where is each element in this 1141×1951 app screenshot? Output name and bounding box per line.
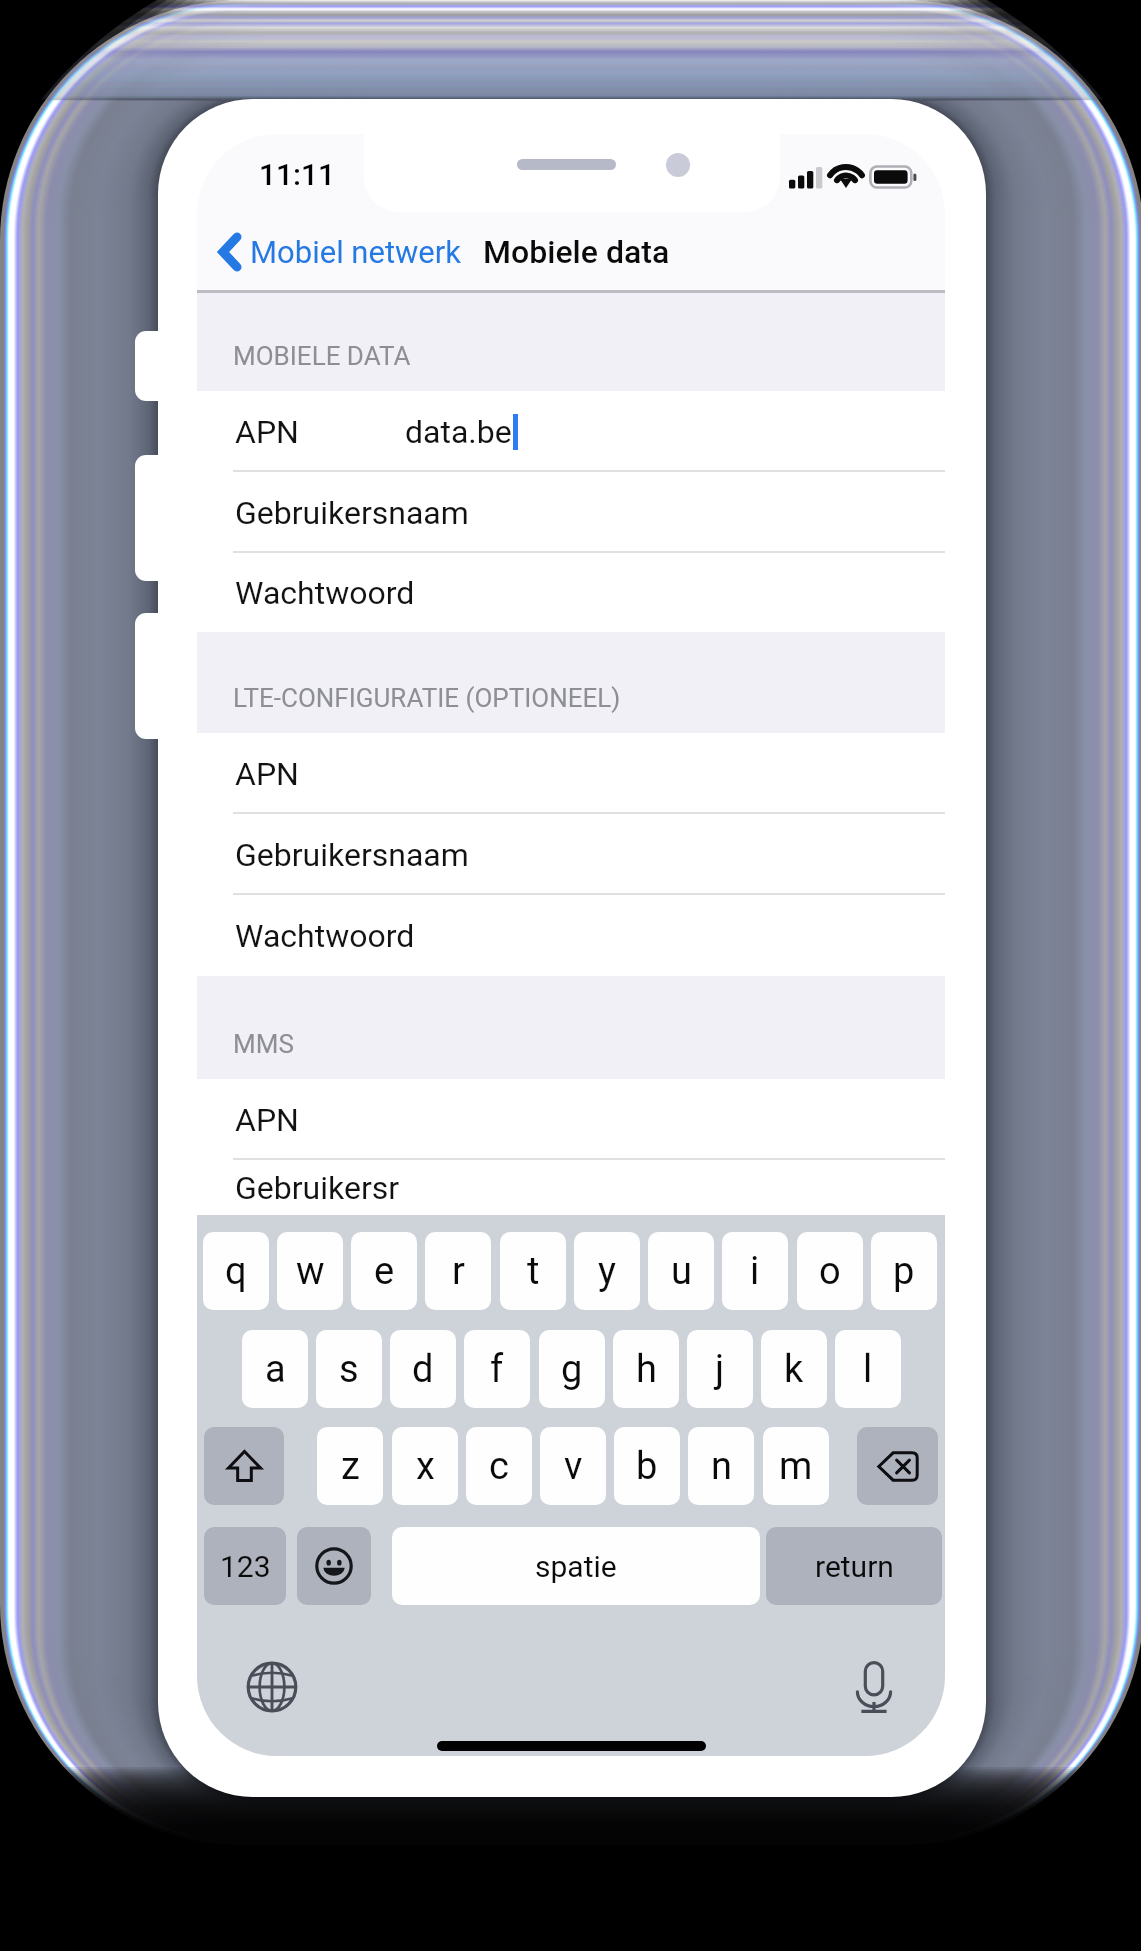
button[interactable]: i [722,1232,788,1310]
button[interactable]: b [614,1427,680,1505]
staticText: f [490,1347,504,1392]
button[interactable]: Wachtwoord [197,553,945,632]
button[interactable]: d [390,1330,456,1408]
button[interactable]: Shift [204,1427,284,1505]
button[interactable]: Wachtwoord [197,895,945,976]
button[interactable]: h [613,1330,679,1408]
staticText: d [412,1347,434,1392]
button[interactable]: j [687,1330,753,1408]
staticText: data.be [405,413,512,451]
staticText: n [711,1444,732,1489]
staticText: x [416,1444,435,1489]
staticText: z [341,1444,360,1489]
button[interactable]: Taal wisselen [243,1658,300,1715]
staticText: c [489,1444,509,1489]
staticText: a [265,1347,286,1392]
button[interactable]: f [464,1330,530,1408]
staticText: h [636,1347,657,1392]
button[interactable]: y [574,1232,640,1310]
button[interactable]: Backspace [857,1427,938,1505]
other: Terug [219,233,240,271]
button[interactable]: u [648,1232,714,1310]
button[interactable]: o [797,1232,863,1310]
staticText: l [863,1347,873,1392]
staticText: MMS [233,1029,294,1059]
staticText: Mobiele data [483,233,670,271]
button[interactable]: l [835,1330,901,1408]
button[interactable]: r [425,1232,491,1310]
staticText: Gebruikersr [235,1169,400,1207]
button[interactable]: p [871,1232,937,1310]
button[interactable]: Emoji [297,1527,371,1605]
button[interactable]: g [539,1330,605,1408]
button[interactable]: APN [197,733,945,814]
button[interactable]: k [761,1330,827,1408]
staticText: i [750,1249,760,1294]
staticText: v [564,1444,583,1489]
staticText: u [671,1249,692,1294]
staticText: return [815,1549,894,1584]
staticText: MOBIELE DATA [233,341,411,371]
staticText: 123 [220,1549,271,1584]
button[interactable]: e [351,1232,417,1310]
button[interactable]: n [688,1427,754,1505]
staticText: APN [235,413,299,451]
button[interactable]: Gebruikersnaam [197,472,945,553]
button[interactable]: Gebruikersr [197,1160,945,1215]
staticText: p [893,1249,915,1294]
button[interactable]: return [766,1527,942,1605]
staticText: e [374,1249,395,1294]
staticText: LTE-CONFIGURATIE (OPTIONEEL) [233,683,621,713]
button[interactable]: z [317,1427,383,1505]
staticText: o [819,1249,841,1294]
button[interactable]: t [500,1232,566,1310]
button[interactable]: v [540,1427,606,1505]
staticText: Gebruikersnaam [235,836,469,874]
staticText: APN [235,755,299,793]
staticText: s [339,1347,359,1392]
button[interactable]: spatie [392,1527,760,1605]
staticText: Wachtwoord [235,574,415,612]
staticText: w [296,1249,325,1294]
staticText: APN [235,1101,299,1139]
button[interactable]: 123 [204,1527,286,1605]
staticText: Mobiel netwerk [250,234,462,270]
button[interactable]: s [316,1330,382,1408]
button[interactable]: q [203,1232,269,1310]
staticText: Gebruikersnaam [235,494,469,532]
staticText: k [784,1347,804,1392]
button[interactable]: Dicteren [845,1658,902,1715]
button[interactable]: APN [197,391,945,472]
button[interactable]: Gebruikersnaam [197,814,945,895]
button[interactable]: m [763,1427,829,1505]
button[interactable]: APN [197,1079,945,1160]
button[interactable]: c [466,1427,532,1505]
button[interactable]: Terug [219,233,462,271]
staticText: q [225,1249,247,1294]
button[interactable]: a [242,1330,308,1408]
staticText: m [779,1444,813,1489]
staticText: y [598,1249,616,1294]
staticText: j [715,1347,725,1392]
staticText: g [561,1347,583,1392]
staticText: r [452,1249,465,1294]
button[interactable]: x [392,1427,458,1505]
staticText: 11:11 [259,157,336,192]
staticText: b [636,1444,658,1489]
staticText: spatie [535,1549,617,1584]
staticText: Wachtwoord [235,917,415,955]
button[interactable]: w [277,1232,343,1310]
staticText: t [527,1249,540,1294]
